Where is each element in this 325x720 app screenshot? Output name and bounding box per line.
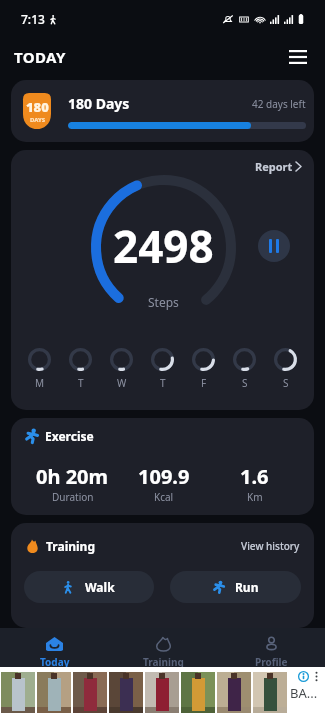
button[interactable]: Today xyxy=(0,628,109,667)
staticText: 7:13 xyxy=(21,11,45,27)
button[interactable]: Pause xyxy=(258,230,290,262)
staticText: Profile xyxy=(255,655,288,667)
staticText: F xyxy=(201,376,207,390)
staticText: 180 Days xyxy=(68,94,130,113)
button[interactable]: Profile xyxy=(217,628,325,667)
button[interactable]: Training xyxy=(109,628,217,667)
staticText: 109.9 xyxy=(138,463,190,490)
staticText: DAYS xyxy=(30,116,46,124)
staticText: TODAY xyxy=(14,47,66,67)
staticText: Steps xyxy=(148,294,179,310)
staticText: S xyxy=(283,376,289,390)
staticText: 42 days left xyxy=(252,97,306,111)
button[interactable]: View history xyxy=(241,539,300,553)
staticText: W xyxy=(117,376,127,390)
button[interactable]: 180 xyxy=(11,80,314,142)
staticText: Kcal xyxy=(154,490,174,504)
button[interactable]: Run xyxy=(170,571,301,603)
staticText: 180 xyxy=(26,98,49,116)
staticText: Walk xyxy=(85,579,115,595)
staticText: Km xyxy=(247,490,263,504)
staticText: T xyxy=(78,376,84,390)
other: Ad info xyxy=(298,671,309,682)
staticText: 0h 20m xyxy=(36,463,109,490)
button[interactable]: Report xyxy=(255,159,301,174)
staticText: S xyxy=(242,376,248,390)
button[interactable]: Menu xyxy=(281,40,315,74)
staticText: Exercise xyxy=(45,428,94,444)
staticText: 2498 xyxy=(113,216,214,276)
staticText: Training xyxy=(143,655,184,667)
staticText: 1.6 xyxy=(240,463,269,490)
staticText: T xyxy=(160,376,166,390)
staticText: Run xyxy=(235,579,259,595)
staticText: Report xyxy=(255,159,293,174)
staticText: Today xyxy=(40,655,70,667)
button[interactable]: Walk xyxy=(24,571,154,603)
staticText: M xyxy=(35,376,45,390)
staticText: Duration xyxy=(52,490,94,504)
staticText: BA... xyxy=(290,684,318,702)
other: More options xyxy=(314,671,319,682)
staticText: Training xyxy=(46,538,95,554)
